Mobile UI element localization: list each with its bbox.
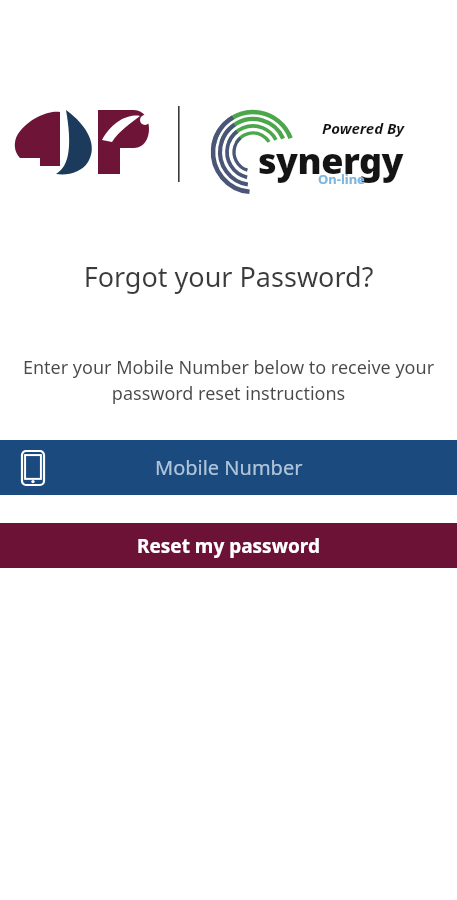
staticText: Reset my password (137, 533, 320, 559)
staticText: Enter your Mobile Number below to receiv… (8, 355, 449, 406)
button[interactable]: Reset my password (0, 523, 457, 568)
staticText: Forgot your Password? (0, 258, 457, 295)
staticText: Mobile Number (155, 454, 303, 481)
staticText: Powered By (322, 118, 405, 138)
button[interactable]: Mobile Number input (0, 440, 457, 495)
staticText: synergy (258, 136, 404, 185)
staticText: On-line (318, 170, 365, 188)
